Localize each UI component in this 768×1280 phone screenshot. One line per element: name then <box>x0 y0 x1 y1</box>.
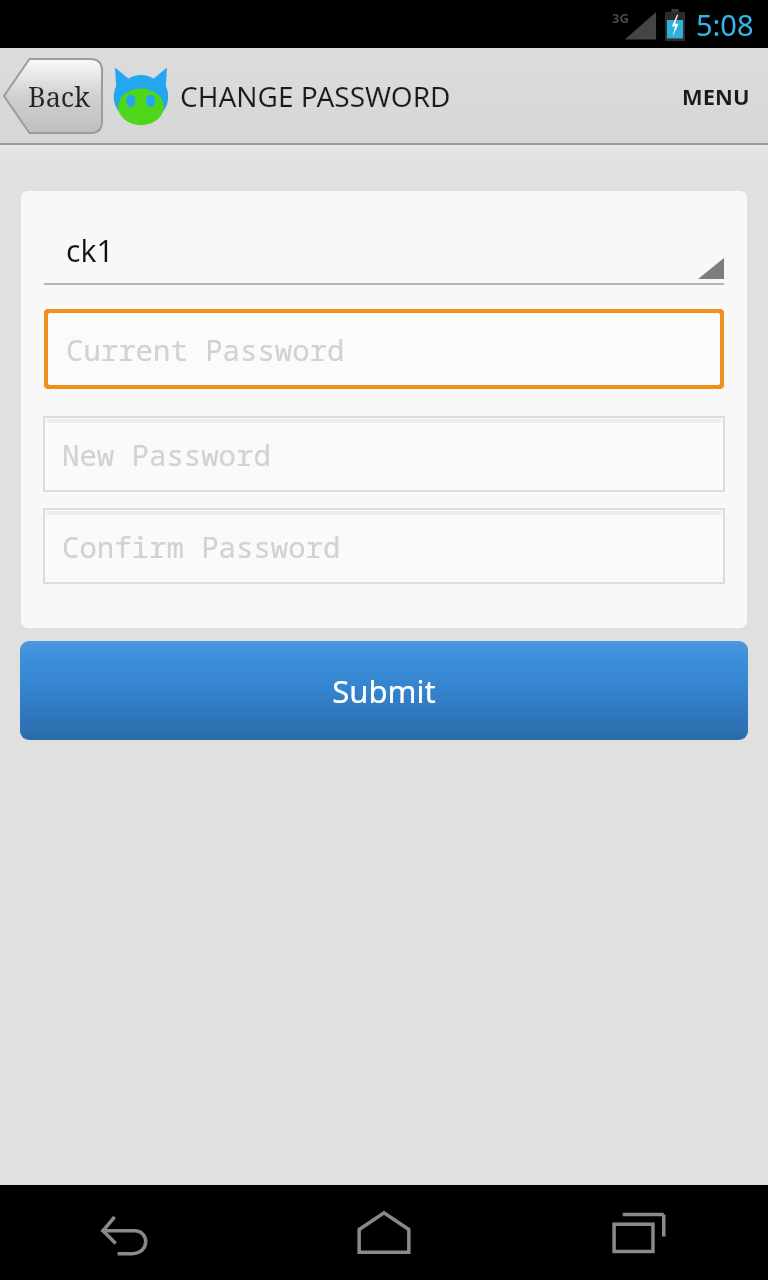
staticText: ck1 <box>66 230 114 271</box>
staticText: Current Password <box>66 330 345 369</box>
staticText: Submit <box>332 670 436 712</box>
staticText: CHANGE PASSWORD <box>180 77 451 115</box>
button[interactable]: Submit <box>20 641 748 740</box>
button[interactable]: Back <box>4 59 102 133</box>
button[interactable]: MENU <box>664 61 768 131</box>
staticText: MENU <box>682 81 750 111</box>
button[interactable]: Recent apps <box>512 1185 768 1280</box>
staticText: New Password <box>62 435 271 474</box>
button[interactable]: Confirm Password <box>44 509 724 583</box>
button[interactable]: New Password <box>44 417 724 491</box>
button[interactable]: ck1 <box>44 227 724 285</box>
staticText: Back <box>28 78 90 115</box>
staticText: 3G <box>612 9 629 27</box>
button[interactable]: Home <box>256 1185 512 1280</box>
button[interactable]: Back <box>0 1185 256 1280</box>
staticText: 5:08 <box>696 5 754 44</box>
button[interactable]: Current Password <box>48 313 720 385</box>
staticText: Confirm Password <box>62 527 341 566</box>
